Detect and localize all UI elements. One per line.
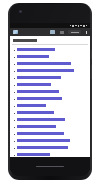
button[interactable]: Link: [10, 82, 90, 88]
button[interactable]: More options: [84, 29, 88, 35]
button[interactable]: Link: [10, 103, 90, 109]
button[interactable]: Link: [10, 131, 90, 137]
button[interactable]: Link: [10, 145, 90, 151]
button[interactable]: Link: [10, 166, 90, 167]
button[interactable]: Link: [10, 89, 90, 95]
button[interactable]: Link: [10, 96, 90, 102]
button[interactable]: Link: [10, 61, 90, 67]
button[interactable]: Tabs: [59, 30, 64, 35]
button[interactable]: Link: [10, 75, 90, 81]
button[interactable]: Link: [10, 54, 90, 60]
button[interactable]: Link: [10, 124, 90, 130]
button[interactable]: Link: [10, 152, 90, 158]
button[interactable]: Link: [10, 68, 90, 74]
button[interactable]: Link: [10, 110, 90, 116]
button[interactable]: Link: [10, 47, 90, 53]
button[interactable]: Tab: [13, 30, 18, 34]
button[interactable]: Link: [10, 117, 90, 123]
button[interactable]: Link: [10, 138, 90, 144]
button[interactable]: Address: [68, 30, 81, 34]
button[interactable]: Tab 2: [50, 30, 55, 34]
